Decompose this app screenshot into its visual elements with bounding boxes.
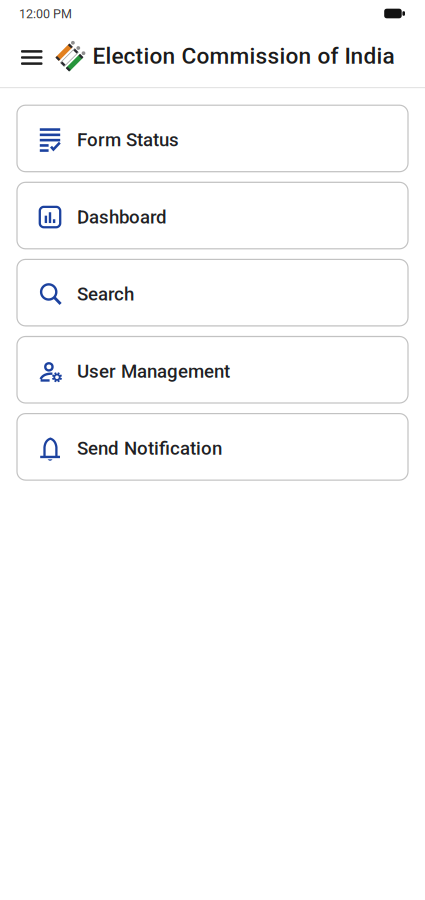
button[interactable]: Search (17, 259, 408, 326)
staticText: Dashboard (77, 206, 167, 228)
button[interactable]: User Management (17, 336, 408, 403)
staticText: Election Commission of India (92, 43, 394, 69)
staticText: Send Notification (77, 437, 222, 459)
button[interactable]: Dashboard (17, 182, 408, 249)
staticText: Form Status (77, 129, 179, 151)
staticText: Search (77, 283, 134, 305)
button[interactable]: Send Notification (17, 414, 408, 480)
staticText: 12:00 PM (19, 7, 72, 21)
button[interactable]: Menu (21, 50, 42, 65)
staticText: User Management (77, 360, 230, 382)
button[interactable]: Form Status (17, 105, 408, 172)
